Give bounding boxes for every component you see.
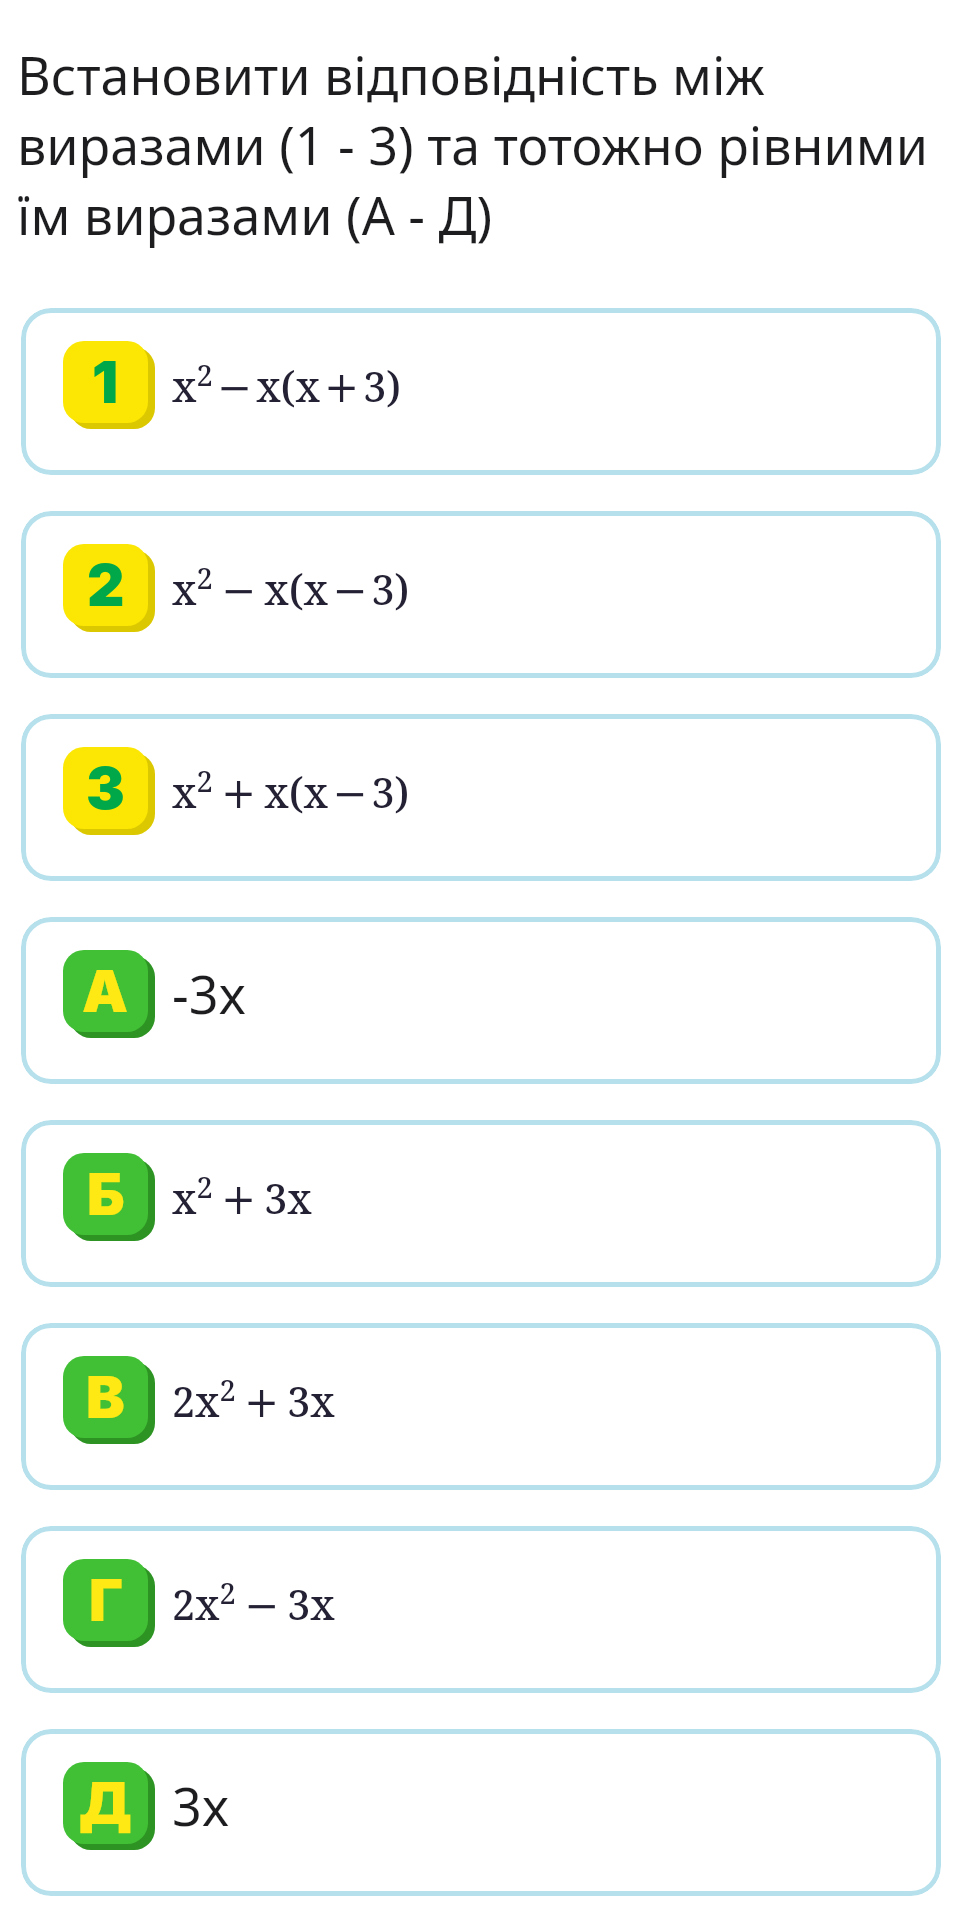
button[interactable]: Б: x² + 3x bbox=[21, 1120, 941, 1287]
staticText: В bbox=[86, 1362, 125, 1432]
staticText: x2 − x(x − 3) bbox=[172, 558, 410, 617]
staticText: 2x2 + 3x bbox=[172, 1370, 335, 1429]
button[interactable]: 3: x² + x(x − 3) bbox=[21, 714, 941, 881]
staticText: x2 + x(x − 3) bbox=[172, 761, 410, 820]
staticText: x2 − x(x + 3) bbox=[172, 355, 402, 414]
staticText: А bbox=[82, 956, 129, 1026]
button[interactable]: А: -3x bbox=[21, 917, 941, 1084]
staticText: 3x bbox=[172, 1770, 230, 1841]
staticText: 2 bbox=[87, 550, 125, 620]
staticText: 3 bbox=[86, 753, 125, 823]
staticText: 1 bbox=[92, 347, 119, 417]
button[interactable]: В: 2x² + 3x bbox=[21, 1323, 941, 1490]
staticText: x2 + 3x bbox=[172, 1167, 312, 1226]
staticText: Г bbox=[89, 1565, 123, 1635]
button[interactable]: Г: 2x² − 3x bbox=[21, 1526, 941, 1693]
staticText: -3x bbox=[172, 958, 246, 1029]
staticText: 2x2 − 3x bbox=[172, 1573, 335, 1632]
staticText: Б bbox=[87, 1159, 125, 1229]
button[interactable]: Д: 3x bbox=[21, 1729, 941, 1896]
staticText: Д bbox=[79, 1768, 132, 1838]
button[interactable]: 2: x² − x(x − 3) bbox=[21, 511, 941, 678]
staticText: Встановити відповідність між виразами (1… bbox=[17, 39, 962, 250]
button[interactable]: 1: x² − x(x + 3) bbox=[21, 308, 941, 475]
